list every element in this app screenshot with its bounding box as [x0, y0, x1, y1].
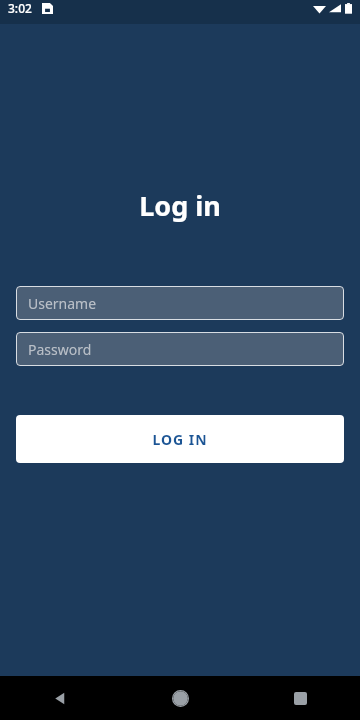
button[interactable]: Home	[120, 676, 240, 720]
staticText: Log in	[139, 187, 221, 224]
button[interactable]: Back	[0, 676, 120, 720]
staticText: Username	[28, 294, 97, 313]
button[interactable]: LOG IN	[16, 415, 344, 463]
staticText: Password	[28, 340, 92, 359]
button[interactable]: Password	[16, 332, 344, 366]
button[interactable]: Username	[16, 286, 344, 320]
button[interactable]: Recent apps	[240, 676, 360, 720]
staticText: LOG IN	[152, 430, 208, 449]
staticText: 3:02	[8, 0, 32, 16]
